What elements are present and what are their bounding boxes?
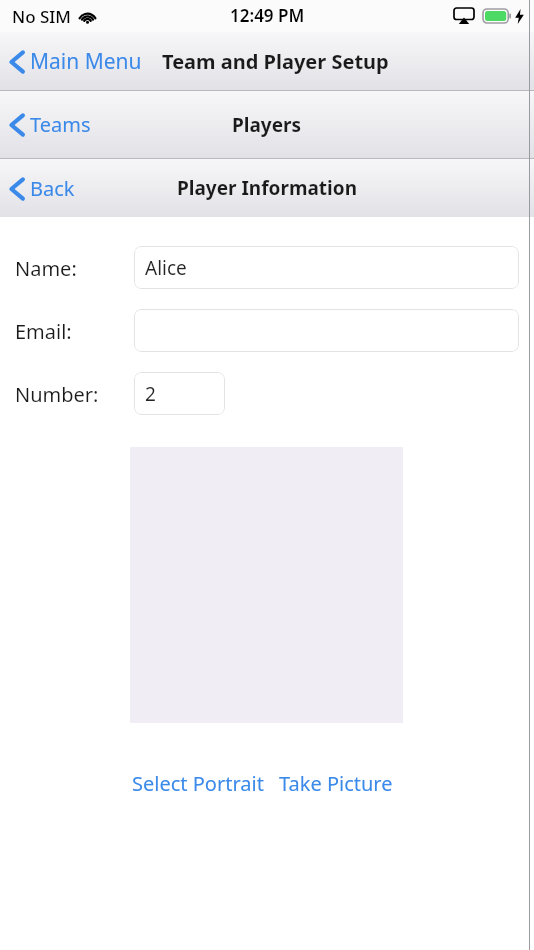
button[interactable]: Alice [134,246,519,289]
staticText: Alice [145,255,187,281]
button[interactable]: Select Portrait [130,764,266,803]
staticText: Select Portrait [132,770,264,797]
staticText: No SIM [12,5,71,28]
staticText: Players [232,112,302,138]
staticText: 2 [145,381,156,407]
staticText: Teams [30,111,91,138]
button[interactable]: Main Menu [0,41,152,82]
staticText: Number: [15,381,99,408]
staticText: Take Picture [279,770,393,797]
staticText: Name: [15,255,77,282]
staticText: Main Menu [30,47,142,76]
staticText: Player Information [177,175,357,201]
staticText: Email: [15,318,72,345]
button[interactable]: Teams [0,105,101,144]
staticText: Team and Player Setup [162,48,389,75]
staticText: Back [30,175,75,202]
button[interactable]: 2 [134,372,225,415]
button[interactable] [134,309,519,352]
button[interactable]: Back [0,169,85,208]
staticText: 12:49 PM [230,4,305,27]
button[interactable]: Take Picture [277,764,395,803]
